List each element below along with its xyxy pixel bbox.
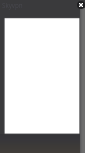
button[interactable]: Close — [77, 1, 85, 9]
staticText: Skyvpn — [2, 1, 23, 9]
button[interactable]: Skyvpn — [2, 1, 23, 9]
button[interactable]: Scrollbar — [79, 8, 85, 153]
